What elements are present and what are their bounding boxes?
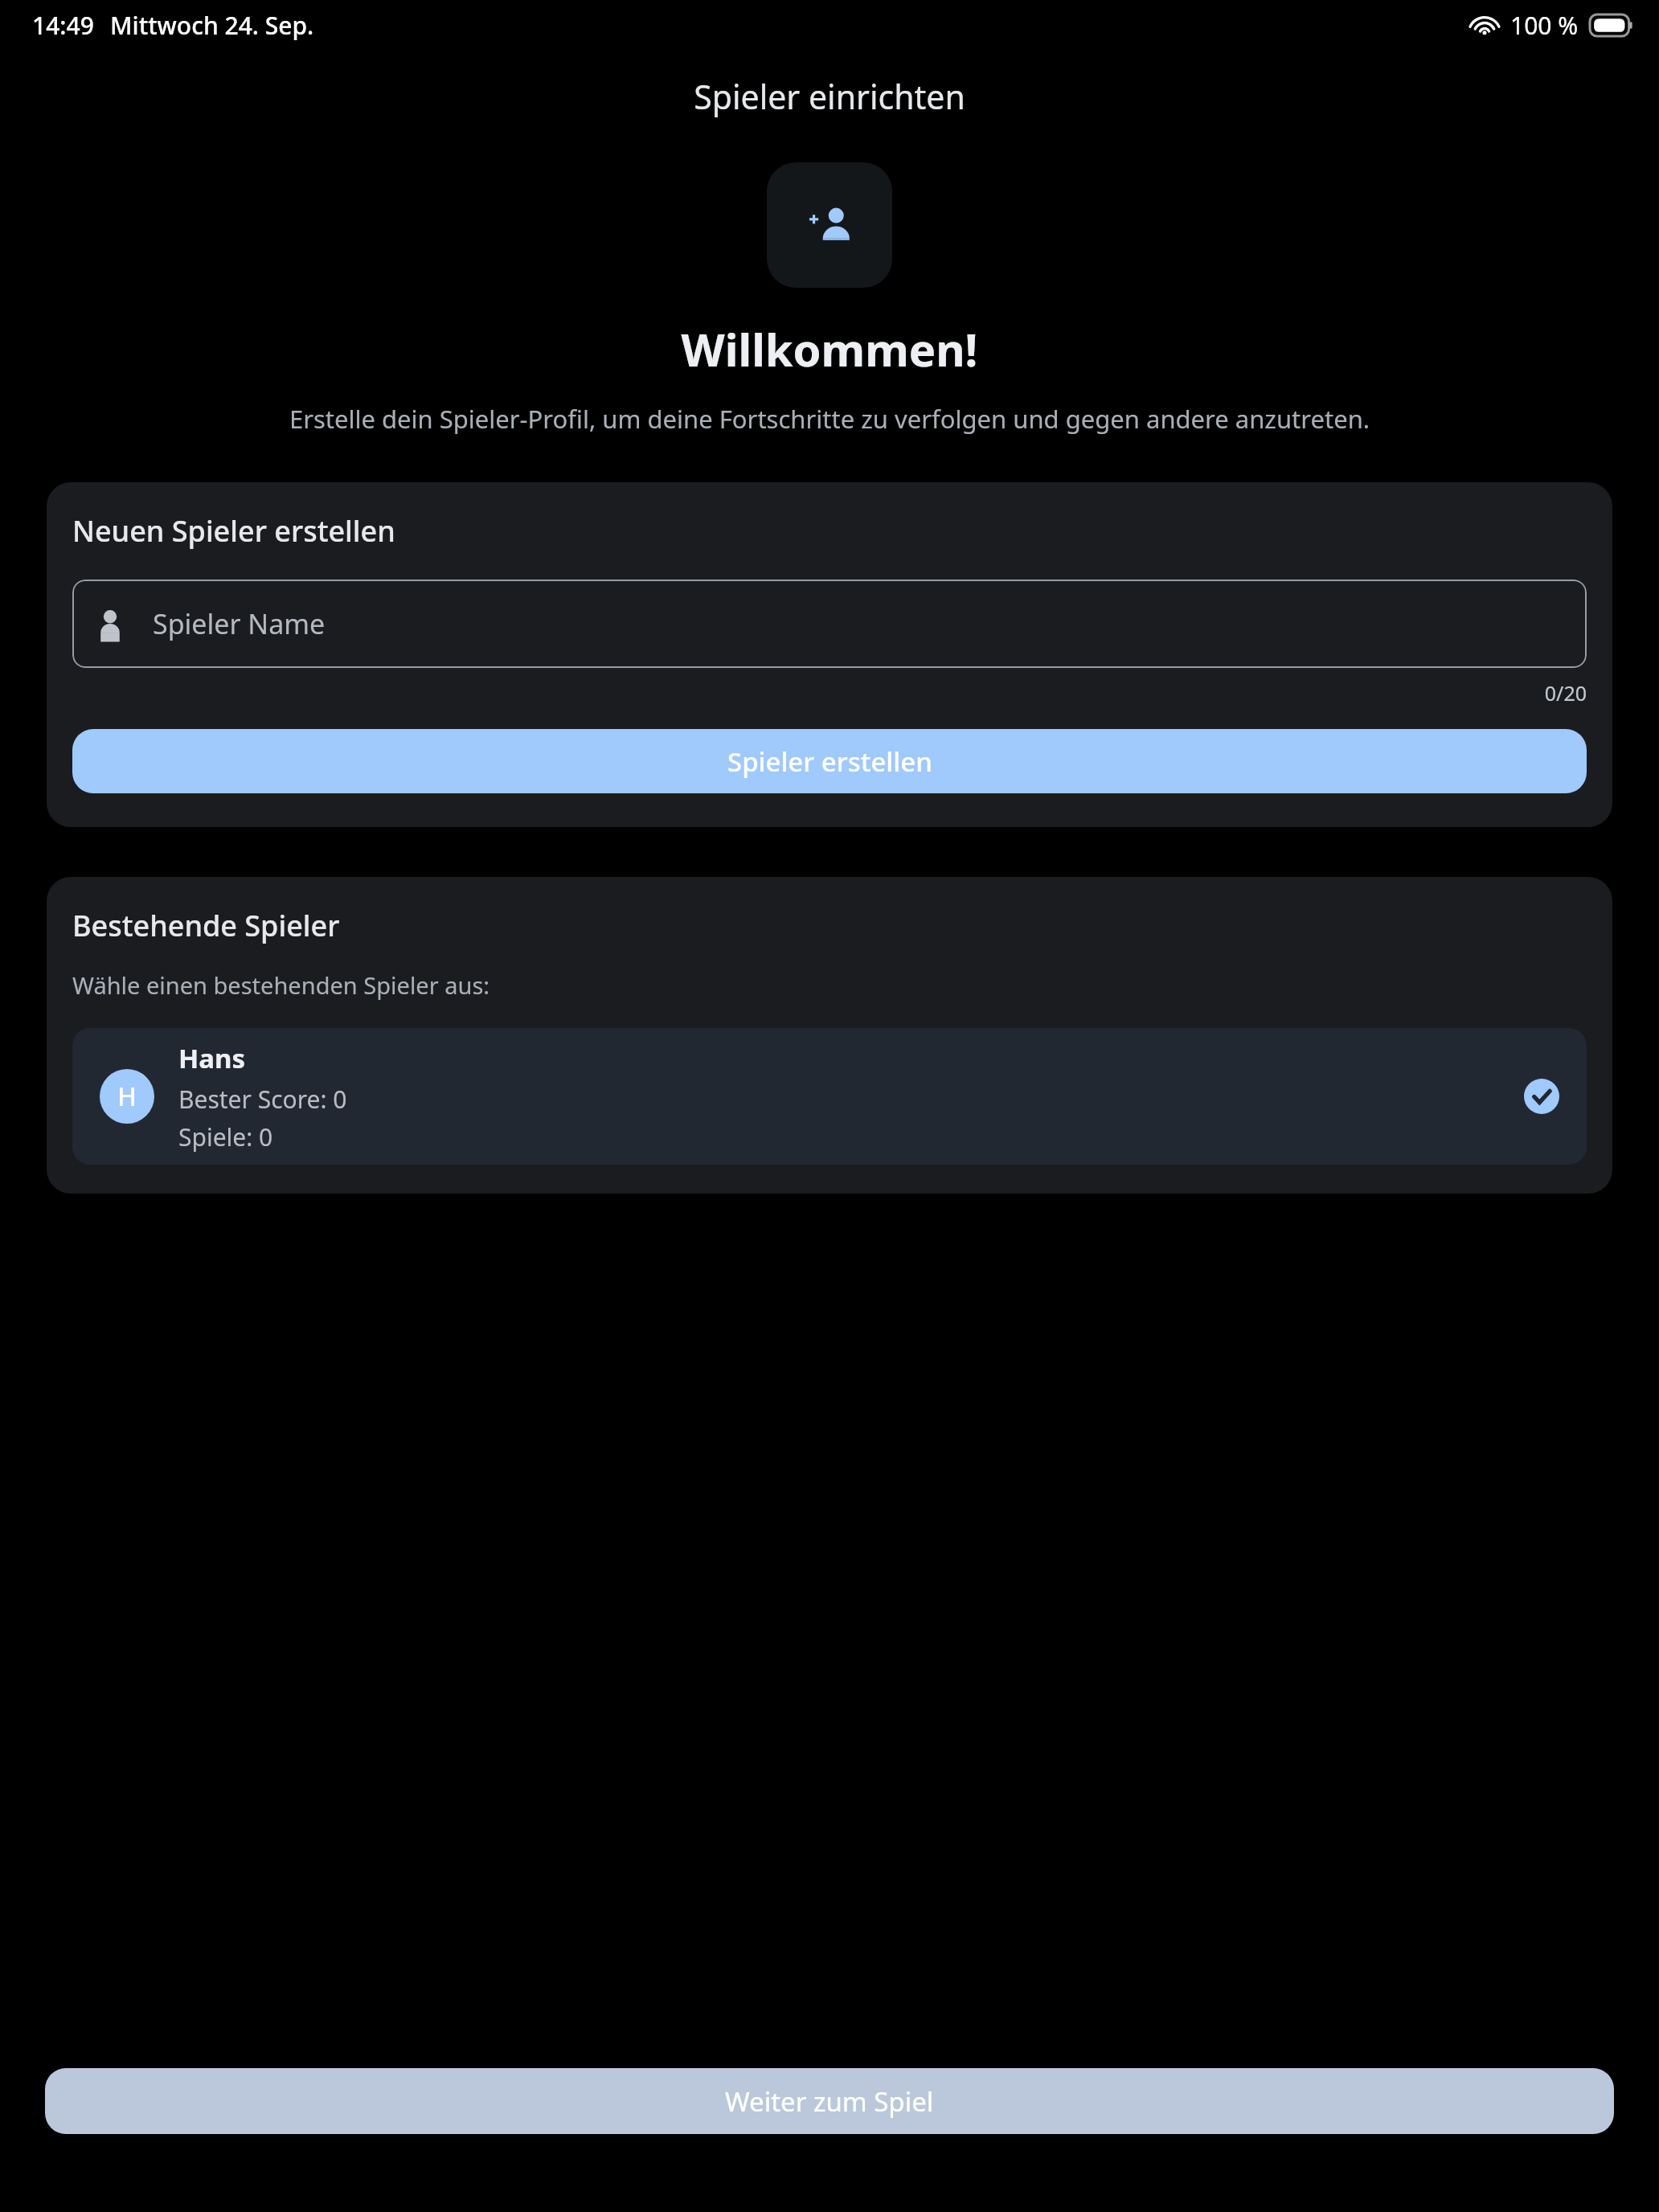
- button[interactable]: H: [72, 1028, 1587, 1165]
- staticText: Spieler Name: [153, 605, 326, 642]
- staticText: Spieler einrichten: [0, 74, 1659, 119]
- staticText: H: [117, 1079, 137, 1114]
- staticText: Weiter zum Spiel: [725, 2083, 934, 2120]
- button[interactable]: Spieler erstellen: [72, 729, 1587, 793]
- staticText: Spiele: 0: [178, 1120, 273, 1153]
- staticText: Spieler erstellen: [727, 743, 932, 780]
- staticText: Neuen Spieler erstellen: [72, 511, 395, 551]
- staticText: Mittwoch 24. Sep.: [110, 9, 314, 42]
- staticText: Wähle einen bestehenden Spieler aus:: [72, 969, 490, 1001]
- button[interactable]: Spieler Name: [72, 580, 1587, 668]
- staticText: Bester Score: 0: [178, 1083, 347, 1116]
- staticText: Hans: [178, 1040, 246, 1076]
- staticText: Willkommen!: [0, 318, 1659, 379]
- other: Ausgewählt: [1524, 1079, 1559, 1114]
- staticText: Bestehende Spieler: [72, 906, 340, 945]
- staticText: 100 %: [1510, 9, 1579, 42]
- button[interactable]: Weiter zum Spiel: [45, 2068, 1614, 2134]
- staticText: 14:49: [32, 9, 94, 42]
- staticText: Erstelle dein Spieler-Profil, um deine F…: [39, 402, 1620, 436]
- staticText: 0/20: [72, 679, 1587, 707]
